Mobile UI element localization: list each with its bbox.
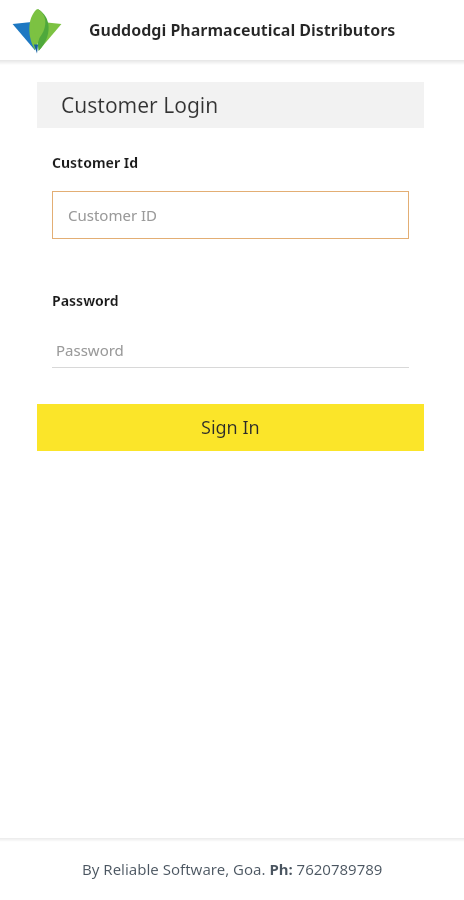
staticText: Sign In <box>201 415 260 440</box>
staticText: Customer ID <box>68 205 158 225</box>
button[interactable]: Sign In <box>37 404 424 451</box>
staticText: Password <box>52 291 119 310</box>
button[interactable]: Customer ID <box>52 191 409 239</box>
other: Company logo <box>11 6 63 54</box>
staticText: Customer Id <box>52 153 139 172</box>
staticText: By Reliable Software, Goa. Ph: 762078978… <box>82 859 383 879</box>
staticText: Password <box>56 340 124 360</box>
staticText: Customer Login <box>61 91 219 120</box>
staticText: Guddodgi Pharmaceutical Distributors <box>89 19 396 41</box>
button[interactable]: Password <box>52 333 409 368</box>
